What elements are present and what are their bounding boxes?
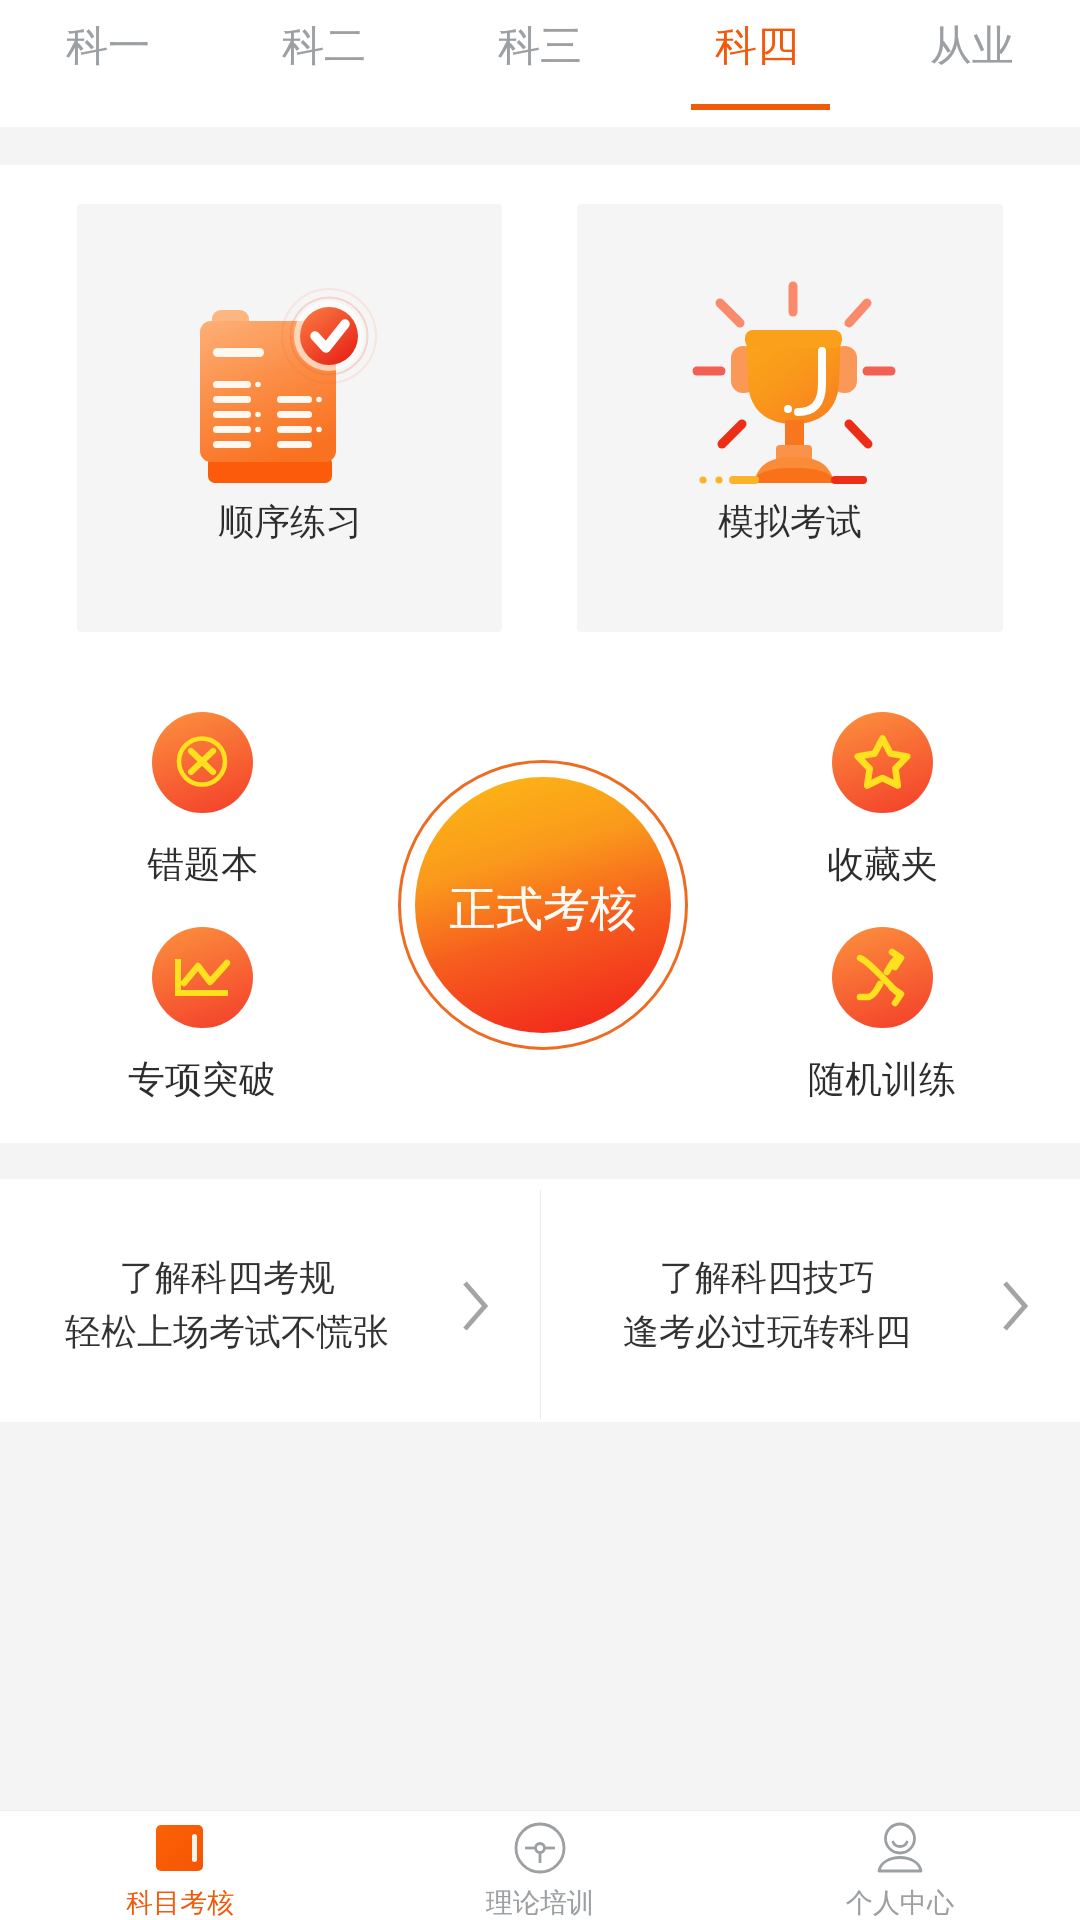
staticText: 理论培训 <box>486 1886 594 1920</box>
staticText: 顺序练习 <box>218 499 362 544</box>
staticText: 科一 <box>66 20 150 73</box>
staticText: 个人中心 <box>846 1886 954 1920</box>
staticText: 模拟考试 <box>718 499 862 544</box>
staticText: 正式考核 <box>449 880 637 939</box>
button[interactable]: 科一 <box>0 0 216 127</box>
staticText: 科目考核 <box>126 1886 234 1920</box>
button[interactable]: 科三 <box>432 0 648 127</box>
button[interactable]: Favorites <box>772 712 992 888</box>
button[interactable]: 了解科四技巧 <box>540 1179 1080 1422</box>
button[interactable]: 了解科四考规 <box>0 1179 540 1422</box>
button[interactable]: 个人中心 <box>720 1811 1080 1920</box>
staticText: 收藏夹 <box>827 841 938 888</box>
button[interactable]: 科目考核 <box>0 1811 360 1920</box>
button[interactable]: 理论培训 <box>360 1811 720 1920</box>
staticText: 错题本 <box>147 841 258 888</box>
button[interactable]: Wrong questions <box>92 712 312 888</box>
staticText: 随机训练 <box>808 1056 956 1103</box>
button[interactable]: 科二 <box>216 0 432 127</box>
button[interactable]: 模拟考试 <box>577 204 1003 632</box>
staticText: 从业 <box>930 20 1014 73</box>
staticText: 专项突破 <box>128 1056 276 1103</box>
button[interactable]: 科四 <box>648 0 864 127</box>
button[interactable]: 正式考核 <box>398 760 688 1050</box>
button[interactable]: Random practice <box>772 927 992 1103</box>
staticText: 科二 <box>282 20 366 73</box>
staticText: 逢考必过玩转科四 <box>623 1309 911 1354</box>
staticText: 轻松上场考试不慌张 <box>65 1309 389 1354</box>
staticText: 了解科四考规 <box>119 1255 335 1300</box>
button[interactable]: 从业 <box>864 0 1080 127</box>
staticText: 科三 <box>498 20 582 73</box>
button[interactable]: Topic practice <box>92 927 312 1103</box>
staticText: 了解科四技巧 <box>659 1255 875 1300</box>
button[interactable]: 顺序练习 <box>77 204 502 632</box>
staticText: 科四 <box>715 20 799 73</box>
